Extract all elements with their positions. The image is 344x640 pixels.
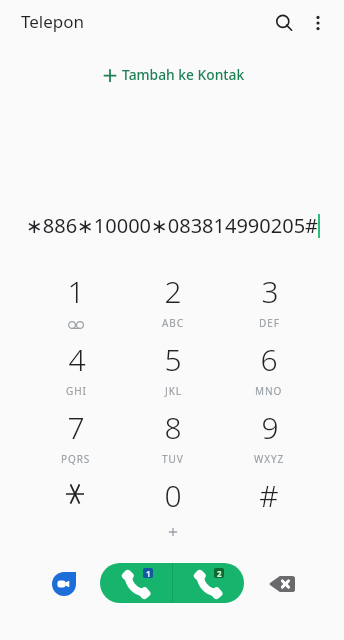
button[interactable]: Backspace: [264, 570, 300, 598]
staticText: DEF: [259, 316, 280, 330]
staticText: PQRS: [61, 452, 91, 466]
staticText: 2: [217, 568, 222, 578]
button[interactable]: 1: [40, 265, 112, 333]
staticText: WXYZ: [254, 452, 285, 466]
staticText: Tambah ke Kontak: [122, 65, 245, 84]
staticText: TUV: [162, 452, 184, 466]
staticText: 7: [67, 407, 85, 448]
staticText: 4: [68, 339, 86, 380]
staticText: 9: [261, 407, 279, 448]
button[interactable]: #: [233, 469, 305, 537]
staticText: 1: [146, 568, 151, 578]
button[interactable]: Video call: [50, 570, 78, 598]
button[interactable]: Search: [270, 9, 298, 37]
button[interactable]: 4: [40, 333, 112, 401]
staticText: 8: [164, 407, 182, 448]
button[interactable]: More options: [304, 9, 332, 37]
staticText: Telepon: [21, 10, 85, 33]
staticText: 6: [260, 339, 278, 380]
button[interactable]: 2: [137, 265, 209, 333]
button[interactable]: [40, 469, 112, 537]
button[interactable]: 8: [137, 401, 209, 469]
button[interactable]: 6: [233, 333, 305, 401]
button[interactable]: 0: [137, 469, 209, 537]
button[interactable]: 7: [40, 401, 112, 469]
staticText: 0: [164, 475, 182, 516]
staticText: 5: [164, 339, 182, 380]
staticText: MNO: [255, 384, 283, 398]
staticText: #: [259, 475, 279, 516]
button[interactable]: 9: [233, 401, 305, 469]
button[interactable]: 3: [233, 265, 305, 333]
button[interactable]: Call with SIM 2: [173, 563, 244, 603]
staticText: 2: [164, 271, 182, 312]
button[interactable]: Call with SIM 1: [100, 563, 172, 603]
staticText: JKL: [165, 384, 182, 398]
staticText: ∗886∗10000∗083814990205#: [26, 212, 318, 239]
staticText: 3: [261, 271, 279, 312]
button[interactable]: 5: [137, 333, 209, 401]
staticText: GHI: [66, 384, 87, 398]
staticText: 1: [67, 271, 85, 312]
button[interactable]: Tambah ke Kontak: [100, 62, 247, 87]
staticText: ABC: [162, 316, 184, 330]
